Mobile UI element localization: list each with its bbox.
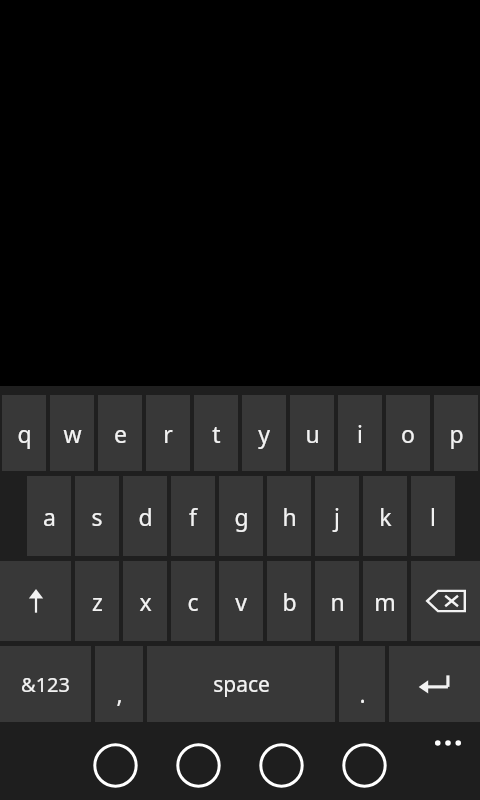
button[interactable]: z bbox=[75, 561, 119, 641]
button[interactable]: Shift bbox=[0, 561, 71, 641]
button[interactable]: g bbox=[219, 476, 263, 556]
button[interactable]: h bbox=[267, 476, 311, 556]
staticText: y bbox=[258, 418, 270, 449]
button[interactable]: l bbox=[411, 476, 455, 556]
staticText: h bbox=[282, 501, 297, 532]
button[interactable]: t bbox=[194, 395, 238, 471]
staticText: a bbox=[43, 501, 56, 532]
button[interactable]: c bbox=[171, 561, 215, 641]
staticText: m bbox=[374, 586, 396, 617]
staticText: p bbox=[449, 418, 464, 449]
button[interactable]: k bbox=[363, 476, 407, 556]
staticText: , bbox=[116, 678, 123, 709]
staticText: u bbox=[305, 418, 320, 449]
button[interactable]: y bbox=[242, 395, 286, 471]
staticText: e bbox=[114, 418, 127, 449]
button[interactable]: d bbox=[123, 476, 167, 556]
button[interactable]: s bbox=[75, 476, 119, 556]
button[interactable]: f bbox=[171, 476, 215, 556]
staticText: w bbox=[63, 418, 82, 449]
button[interactable]: p bbox=[434, 395, 478, 471]
button[interactable]: r bbox=[146, 395, 190, 471]
staticText: . bbox=[359, 678, 366, 709]
staticText: g bbox=[234, 501, 249, 532]
button[interactable]: , bbox=[95, 646, 143, 722]
staticText: b bbox=[282, 586, 297, 617]
button[interactable]: App bar action bbox=[172, 739, 224, 791]
button[interactable]: n bbox=[315, 561, 359, 641]
staticText: q bbox=[17, 418, 32, 449]
button[interactable]: w bbox=[50, 395, 94, 471]
button[interactable]: v bbox=[219, 561, 263, 641]
staticText: s bbox=[91, 501, 103, 532]
staticText: k bbox=[379, 501, 392, 532]
button[interactable]: App bar action bbox=[255, 739, 307, 791]
button[interactable]: e bbox=[98, 395, 142, 471]
button[interactable]: x bbox=[123, 561, 167, 641]
button[interactable]: App bar action bbox=[338, 739, 390, 791]
button[interactable]: &123 bbox=[0, 646, 91, 722]
staticText: l bbox=[430, 501, 436, 532]
button[interactable]: q bbox=[2, 395, 46, 471]
button[interactable]: m bbox=[363, 561, 407, 641]
staticText: f bbox=[189, 501, 197, 532]
button[interactable]: App bar action bbox=[89, 739, 141, 791]
button[interactable]: o bbox=[386, 395, 430, 471]
staticText: r bbox=[163, 418, 173, 449]
button[interactable]: i bbox=[338, 395, 382, 471]
button[interactable]: j bbox=[315, 476, 359, 556]
button[interactable]: a bbox=[27, 476, 71, 556]
staticText: o bbox=[401, 418, 415, 449]
staticText: space bbox=[213, 670, 270, 699]
button[interactable]: Enter bbox=[389, 646, 480, 722]
staticText: v bbox=[235, 586, 247, 617]
staticText: j bbox=[334, 501, 340, 532]
button[interactable]: More options bbox=[416, 724, 480, 762]
button[interactable]: b bbox=[267, 561, 311, 641]
staticText: z bbox=[92, 586, 103, 617]
staticText: c bbox=[187, 586, 199, 617]
button[interactable]: u bbox=[290, 395, 334, 471]
button[interactable]: Backspace bbox=[411, 561, 480, 641]
staticText: t bbox=[212, 418, 221, 449]
button[interactable]: . bbox=[339, 646, 385, 722]
staticText: d bbox=[138, 501, 153, 532]
staticText: i bbox=[357, 418, 363, 449]
staticText: &123 bbox=[21, 671, 70, 698]
button[interactable]: space bbox=[147, 646, 335, 722]
staticText: n bbox=[330, 586, 345, 617]
staticText: x bbox=[139, 586, 152, 617]
